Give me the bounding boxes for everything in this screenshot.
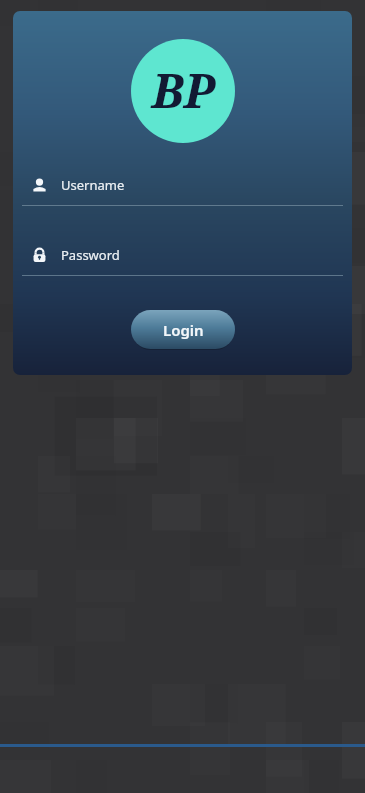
button[interactable]: Password: [22, 242, 343, 276]
other: BP logo: [131, 39, 235, 143]
other: Username: [31, 177, 48, 194]
button[interactable]: Login: [131, 310, 235, 349]
other: Password: [31, 247, 48, 264]
button[interactable]: Username: [22, 172, 343, 206]
staticText: BP: [151, 57, 216, 122]
staticText: Password: [61, 246, 120, 264]
staticText: Login: [163, 320, 204, 340]
staticText: Username: [61, 176, 125, 194]
